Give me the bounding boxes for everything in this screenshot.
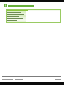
button[interactable] — [6, 17, 61, 19]
button[interactable] — [2, 79, 61, 80]
button[interactable]: Report logo — [0, 2, 64, 82]
other: Report logo — [4, 4, 7, 7]
button[interactable] — [6, 13, 61, 15]
button[interactable] — [6, 9, 61, 23]
button[interactable] — [6, 15, 61, 17]
button[interactable] — [6, 11, 61, 13]
button[interactable] — [6, 21, 61, 23]
button[interactable]: Report logo — [4, 4, 60, 7]
button[interactable] — [6, 19, 61, 21]
